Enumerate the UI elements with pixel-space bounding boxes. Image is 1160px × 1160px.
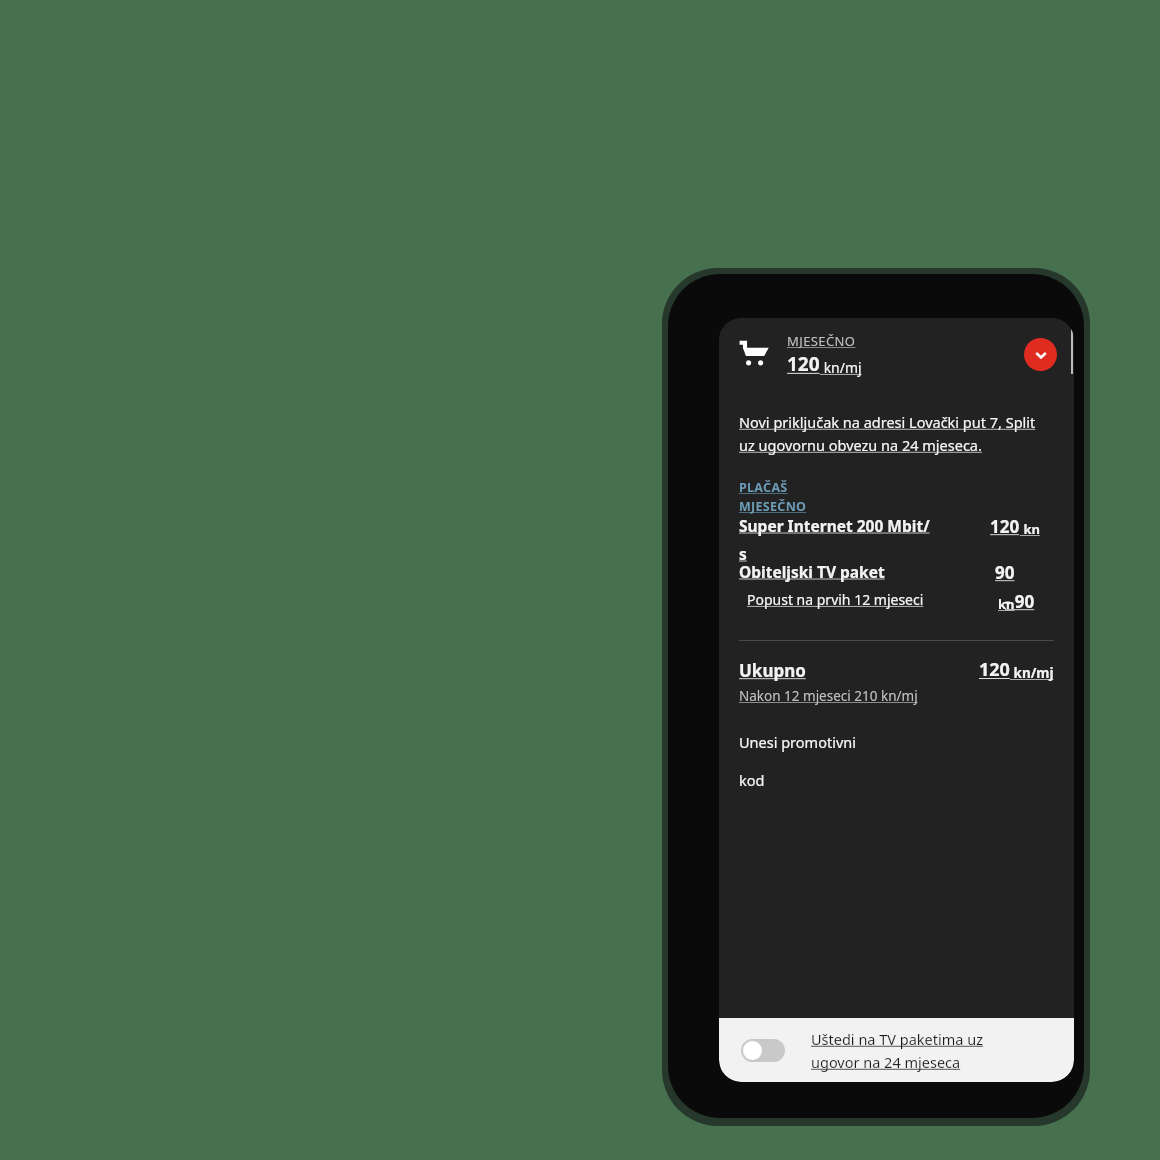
- staticText: kn/mj: [1010, 664, 1054, 682]
- staticText: s: [739, 543, 747, 564]
- staticText: MJESEČNO: [787, 332, 856, 350]
- staticText: kn/mj: [820, 358, 862, 377]
- staticText: Nakon 12 mjeseci 210 kn/mj: [739, 687, 918, 705]
- staticText: Novi priključak na adresi Lovački put 7,…: [739, 412, 1036, 432]
- staticText: Super Internet 200 Mbit/: [739, 515, 930, 536]
- button[interactable]: Unesi promotivni: [719, 732, 1074, 790]
- staticText: - 90: [1005, 590, 1035, 613]
- button[interactable]: Contract toggle: [719, 1018, 1074, 1082]
- staticText: Obiteljski TV paket: [739, 561, 885, 582]
- staticText: PLAČAŠ: [739, 479, 788, 496]
- button[interactable]: Expand details: [1024, 338, 1057, 371]
- other: Contract toggle: [741, 1039, 785, 1062]
- staticText: MJESEČNO: [739, 498, 807, 515]
- staticText: Ukupno: [739, 659, 806, 682]
- staticText: Popust na prvih 12 mjeseci: [747, 590, 924, 609]
- staticText: kn: [998, 595, 1015, 613]
- staticText: Uštedi na TV paketima uz: [811, 1029, 983, 1049]
- staticText: kod: [739, 770, 765, 790]
- staticText: 120: [990, 515, 1020, 538]
- staticText: Unesi promotivni: [739, 732, 856, 752]
- button[interactable]: MJESEČNO: [719, 318, 1074, 390]
- staticText: 120: [787, 351, 820, 377]
- staticText: ugovor na 24 mjeseca: [811, 1052, 961, 1072]
- staticText: kn: [1020, 520, 1040, 538]
- staticText: 90: [995, 561, 1015, 584]
- staticText: 120: [979, 657, 1010, 682]
- staticText: uz ugovornu obvezu na 24 mjeseca.: [739, 435, 982, 455]
